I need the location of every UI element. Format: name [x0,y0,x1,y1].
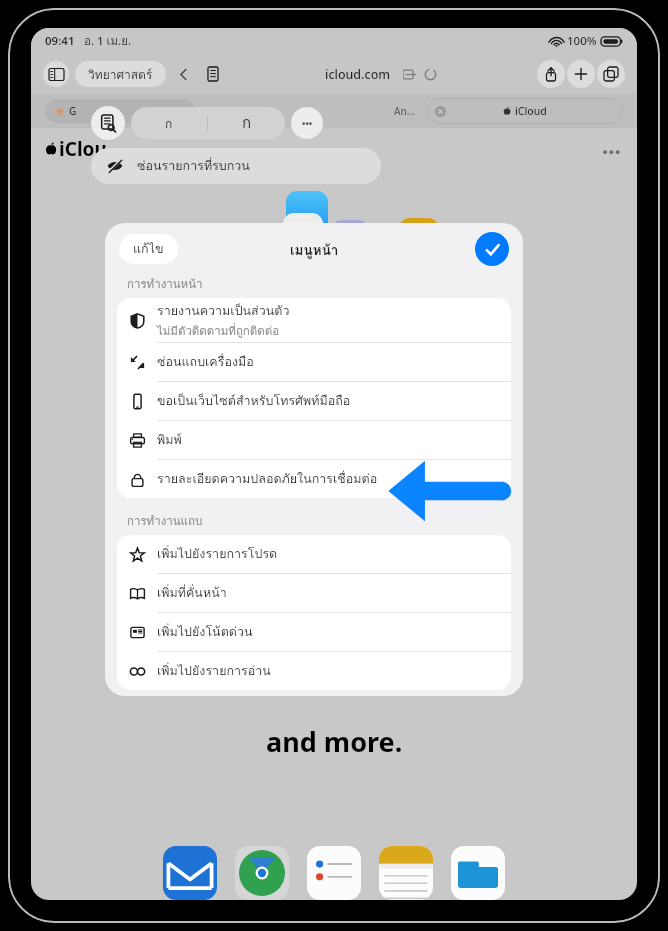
staticText: ขอเป็นเว็บไซต์สำหรับโทรศัพท์มือถือ [157,391,351,411]
button[interactable]: แก้ไข [119,234,178,264]
button[interactable] [451,846,505,900]
button[interactable] [163,846,217,900]
staticText: ไม่มีตัวติดตามที่ถูกติดต่อ [157,322,280,340]
button[interactable]: Reader [91,106,125,140]
staticText: icloud.com [325,66,391,83]
button[interactable]: รายละเอียดความปลอดภัยในการเชื่อมต่อ [117,460,511,498]
staticText: … [602,130,621,160]
button[interactable]: ขอเป็นเว็บไซต์สำหรับโทรศัพท์มือถือ [117,382,511,420]
staticText: การทำงานหน้า [127,275,203,293]
button[interactable] [307,846,361,900]
staticText: ก [242,111,252,135]
staticText: รายงานความเป็นส่วนตัว [157,301,290,321]
staticText: เมนูหน้า [290,239,339,260]
staticText: รายละเอียดความปลอดภัยในการเชื่อมต่อ [157,469,378,489]
button[interactable]: New tab [567,60,595,88]
button[interactable]: ซ่อนแถบเครื่องมือ [117,343,511,381]
button[interactable]: เพิ่มไปยังรายการโปรด [117,535,511,573]
staticText: เพิ่มไปยังรายการอ่าน [157,661,271,681]
staticText: เพิ่มไปยังรายการโปรด [157,544,278,564]
staticText: เพิ่มไปยังโน้ตด่วน [157,622,253,642]
button[interactable] [235,846,289,900]
staticText: พิมพ์ [157,430,182,450]
staticText: การทำงานแถบ [127,512,203,530]
button[interactable]: พิมพ์ [117,421,511,459]
button[interactable]: Tabs [597,60,625,88]
button[interactable]: More [291,107,323,139]
button[interactable]: G [45,99,195,123]
staticText: แก้ไข [133,239,164,259]
button[interactable]: วิทยาศาสตร์ [75,61,166,87]
button[interactable]: รายงานความเป็นส่วนตัว [117,298,511,342]
button[interactable]: เพิ่มที่คั่นหน้า [117,574,511,612]
button[interactable]: iCloud [427,98,623,124]
staticText: 09:41 [45,33,75,49]
button[interactable]: Reader [200,61,226,87]
button[interactable]: Done [475,232,509,266]
staticText: ก [165,114,173,133]
button[interactable] [379,846,433,900]
staticText: An... [394,104,415,118]
button[interactable]: Sidebar [43,61,69,87]
staticText: ••• [302,117,313,129]
staticText: and more. [266,723,403,760]
button[interactable]: ก [131,107,207,139]
button[interactable]: ซ่อนรายการที่รบกวน [91,148,381,184]
staticText: G [69,104,77,118]
staticText: 100% [567,33,597,49]
staticText: ซ่อนรายการที่รบกวน [137,156,250,176]
staticText: iCloud [515,104,547,118]
staticText: เพิ่มที่คั่นหน้า [157,583,227,603]
staticText: ซ่อนแถบเครื่องมือ [157,352,254,372]
staticText: วิทยาศาสตร์ [88,65,153,84]
button[interactable]: เพิ่มไปยังโน้ตด่วน [117,613,511,651]
button[interactable]: Share [537,60,565,88]
button[interactable]: Back [170,61,196,87]
button[interactable]: ก [208,107,285,139]
button[interactable]: เพิ่มไปยังรายการอ่าน [117,652,511,690]
staticText: iClou [59,136,107,162]
staticText: อ. 1 เม.ย. [84,32,132,50]
